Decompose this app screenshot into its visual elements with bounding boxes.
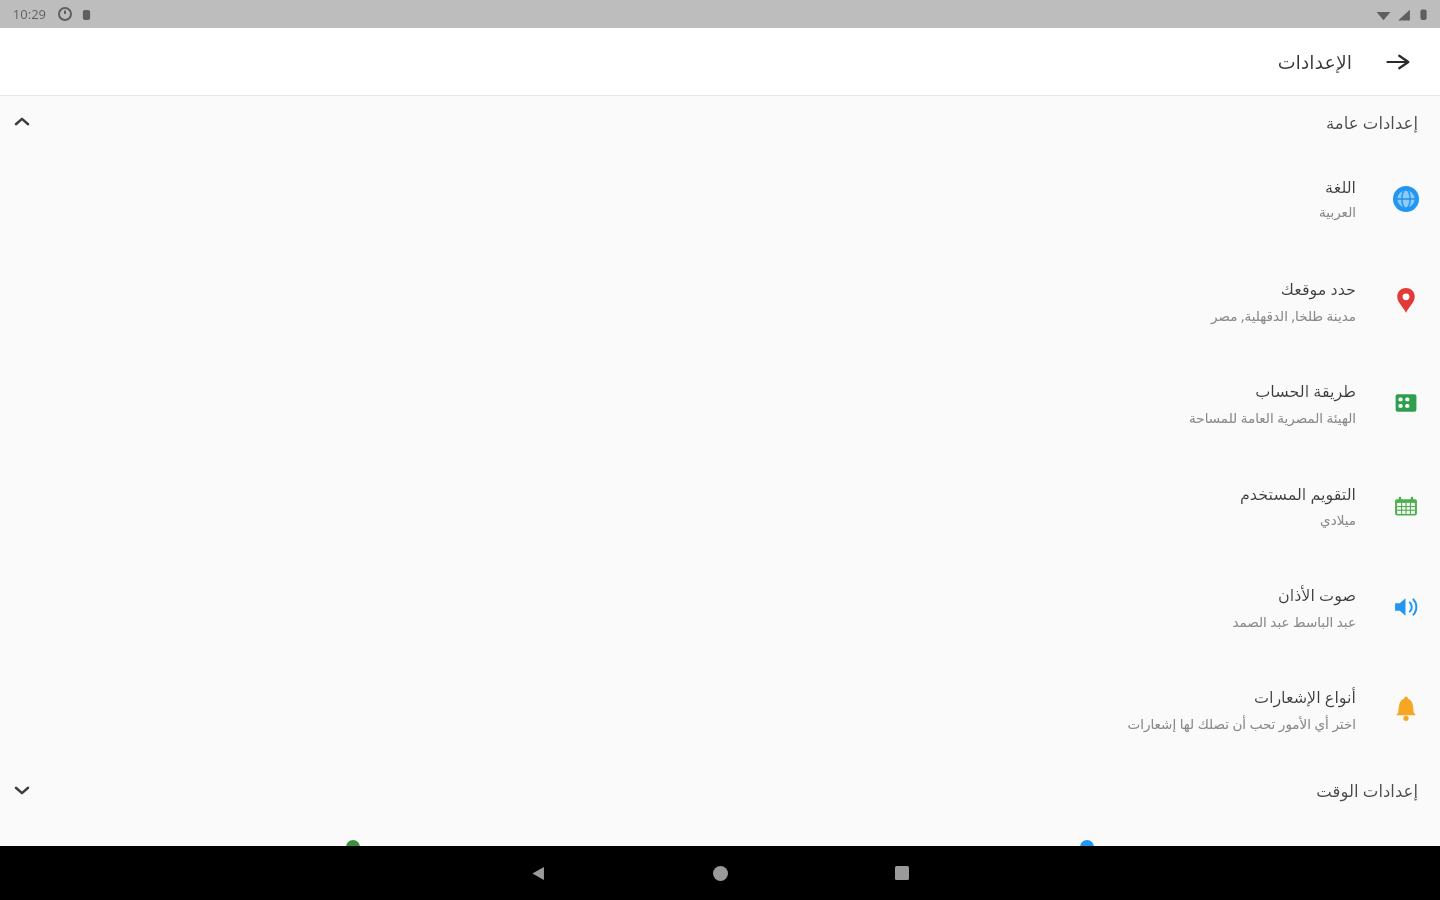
staticText: أنواع الإشعارات [1253, 686, 1356, 708]
button[interactable]: إعدادات الوقت [0, 760, 1440, 820]
button[interactable]: أنواع الإشعارات [0, 658, 1440, 760]
button[interactable]: Back [1376, 40, 1420, 84]
staticText: العربية [1319, 204, 1356, 220]
staticText: صوت الأذان [1278, 584, 1356, 606]
staticText: طريقة الحساب [1255, 380, 1356, 402]
staticText: الهيئة المصرية العامة للمساحة [1189, 409, 1356, 427]
staticText: 10:29 [12, 5, 46, 23]
staticText: مدينة طلخا, الدقهلية, مصر [1211, 307, 1356, 325]
button[interactable]: طريقة الحساب [0, 352, 1440, 454]
staticText: اختر أي الأمور تحب أن تصلك لها إشعارات [1127, 715, 1356, 733]
button[interactable]: اللغة [0, 148, 1440, 250]
button[interactable]: Home [692, 846, 748, 900]
staticText: التقويم المستخدم [1239, 483, 1356, 505]
button[interactable]: التقويم المستخدم [0, 454, 1440, 556]
staticText: عبد الباسط عبد الصمد [1232, 613, 1356, 631]
button[interactable]: Back [510, 846, 566, 900]
staticText: إعدادات الوقت [1316, 779, 1418, 801]
staticText: حدد موقعك [1280, 278, 1356, 300]
button[interactable]: صوت الأذان [0, 556, 1440, 658]
staticText: الإعدادات [1277, 51, 1352, 73]
button[interactable]: Recent apps [874, 846, 930, 900]
button[interactable]: إعدادات عامة [0, 96, 1440, 148]
staticText: ميلادي [1320, 512, 1356, 528]
staticText: اللغة [1325, 178, 1356, 197]
button[interactable]: حدد موقعك [0, 250, 1440, 352]
staticText: إعدادات عامة [1326, 111, 1418, 133]
